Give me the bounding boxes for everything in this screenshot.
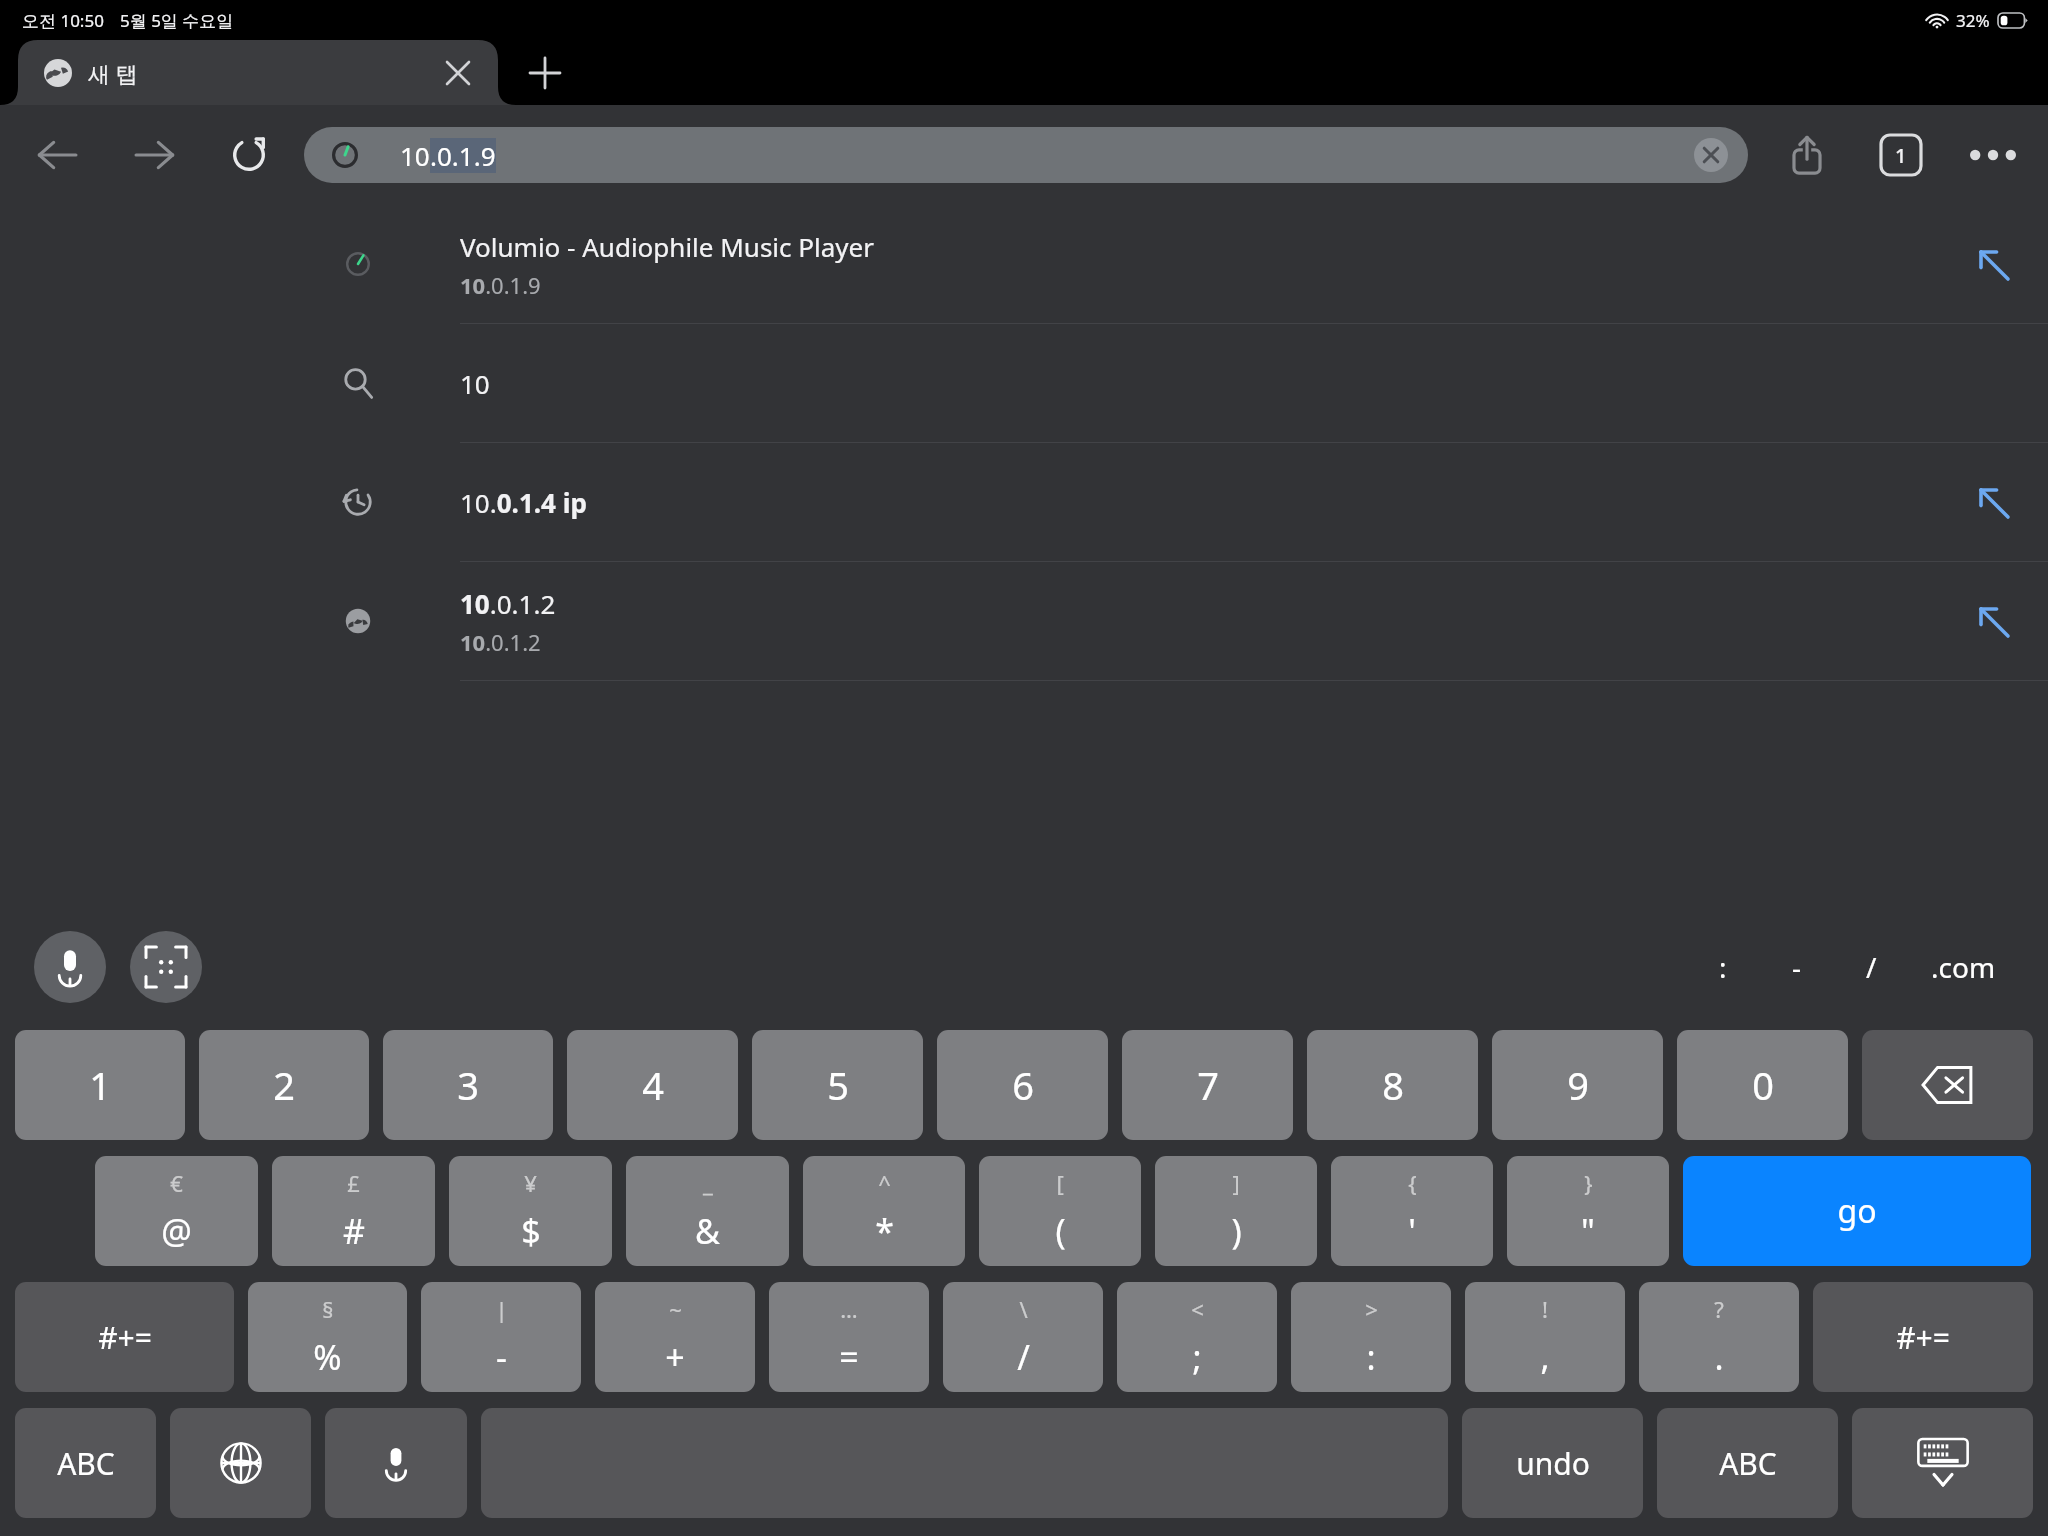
staticText: 10.0.1.4 ip [460, 485, 587, 520]
staticText: … [840, 1294, 858, 1324]
staticText: # [343, 1208, 365, 1254]
staticText: 6 [1012, 1059, 1034, 1111]
button[interactable]: 새 탭 [18, 40, 498, 105]
button[interactable]: 삭제 [1862, 1030, 2033, 1140]
button[interactable]: 새 탭 추가 [512, 40, 577, 105]
staticText: ~ [669, 1294, 682, 1324]
staticText: @ [161, 1208, 192, 1254]
button[interactable]: 2 [199, 1030, 369, 1140]
button[interactable]: ! [1465, 1282, 1625, 1392]
button[interactable]: 뒤로 [28, 126, 86, 184]
button[interactable]: 주소창에 입력 [1938, 205, 2048, 323]
staticText: . [1714, 1334, 1724, 1380]
staticText: 32% [1956, 9, 1990, 32]
staticText: 10.0.1.2 [460, 627, 541, 657]
staticText: 오전 10:50 [22, 9, 104, 32]
staticText: ( [1055, 1208, 1066, 1254]
button[interactable]: 9 [1492, 1030, 1663, 1140]
button[interactable]: ABC [15, 1408, 156, 1518]
button[interactable]: } [1507, 1156, 1669, 1266]
button[interactable]: 새로고침 [220, 126, 278, 184]
button[interactable]: / [1834, 930, 1908, 1004]
button[interactable]: #+= [1813, 1282, 2033, 1392]
staticText: / [1017, 1334, 1030, 1380]
button[interactable]: 0 [1677, 1030, 1848, 1140]
staticText: ' [1408, 1208, 1416, 1254]
staticText: 7 [1197, 1059, 1219, 1111]
button[interactable]: 8 [1307, 1030, 1478, 1140]
button[interactable]: 5 [752, 1030, 923, 1140]
staticText: #+= [1896, 1317, 1950, 1358]
button[interactable]: 언어 전환 [170, 1408, 311, 1518]
staticText: % [313, 1334, 342, 1380]
button[interactable]: - [1760, 930, 1834, 1004]
button[interactable]: … [769, 1282, 929, 1392]
staticText: Volumio - Audiophile Music Player [460, 229, 874, 264]
staticText: : [1719, 948, 1727, 986]
staticText: | [495, 1294, 508, 1324]
button[interactable]: 10 [304, 127, 1748, 183]
button[interactable]: _ [626, 1156, 789, 1266]
button[interactable]: ] [1155, 1156, 1317, 1266]
button[interactable]: > [1291, 1282, 1451, 1392]
button[interactable]: € [95, 1156, 258, 1266]
staticText: 2 [273, 1059, 295, 1111]
staticText: #+= [98, 1317, 152, 1358]
staticText: .com [1931, 948, 1996, 986]
staticText: ABC [1719, 1443, 1777, 1484]
button[interactable]: : [1686, 930, 1760, 1004]
button[interactable]: 추가 메뉴 [1964, 126, 2022, 184]
staticText: § [322, 1294, 334, 1324]
button[interactable]: 주소창에 입력 [1938, 562, 2048, 680]
button[interactable]: [ [979, 1156, 1141, 1266]
staticText: 5 [827, 1059, 849, 1111]
staticText: 4 [642, 1059, 664, 1111]
button[interactable]: #+= [15, 1282, 234, 1392]
button[interactable]: 7 [1122, 1030, 1293, 1140]
button[interactable]: 3 [383, 1030, 553, 1140]
staticText: $ [521, 1208, 541, 1254]
staticText: ABC [57, 1443, 115, 1484]
staticText: ! [1542, 1294, 1548, 1324]
staticText: - [496, 1334, 507, 1380]
button[interactable]: 앞으로 [126, 126, 184, 184]
button[interactable]: { [1331, 1156, 1493, 1266]
staticText: : [1366, 1334, 1376, 1380]
button[interactable]: < [1117, 1282, 1277, 1392]
button[interactable]: 탭 닫기 [438, 53, 478, 93]
button[interactable]: \ [943, 1282, 1103, 1392]
staticText: 0 [1752, 1059, 1774, 1111]
button[interactable]: 음성 입력 [325, 1408, 467, 1518]
button[interactable]: £ [272, 1156, 435, 1266]
button[interactable]: 4 [567, 1030, 738, 1140]
button[interactable]: | [421, 1282, 581, 1392]
button[interactable]: ABC [1657, 1408, 1838, 1518]
button[interactable]: ^ [803, 1156, 965, 1266]
button[interactable]: ? [1639, 1282, 1799, 1392]
button[interactable]: ¥ [449, 1156, 612, 1266]
button[interactable]: 음성 입력 [34, 931, 106, 1003]
button[interactable]: 10 [0, 324, 2048, 442]
button[interactable]: ~ [595, 1282, 755, 1392]
button[interactable]: § [248, 1282, 407, 1392]
staticText: , [1540, 1334, 1550, 1380]
button[interactable]: 코드 스캔 [130, 931, 202, 1003]
staticText: [ [1056, 1168, 1064, 1198]
button[interactable]: 10.0.1.2 [0, 562, 2048, 680]
button[interactable]: 지우기 [1684, 128, 1738, 182]
staticText: { [1408, 1168, 1417, 1198]
button[interactable]: 주소창에 입력 [1938, 443, 2048, 561]
staticText: € [170, 1168, 183, 1198]
button[interactable]: 6 [937, 1030, 1108, 1140]
button[interactable]: 10.0.1.4 ip [0, 443, 2048, 561]
button[interactable]: .com [1908, 930, 2018, 1004]
button[interactable]: undo [1462, 1408, 1643, 1518]
button[interactable]: 1 [15, 1030, 185, 1140]
button[interactable]: 공유 [1778, 126, 1836, 184]
staticText: 10.0.1.2 [460, 586, 556, 621]
button[interactable]: go [1683, 1156, 2031, 1266]
button[interactable]: Volumio - Audiophile Music Player [0, 205, 2048, 323]
button[interactable]: 키보드 숨기기 [1852, 1408, 2033, 1518]
button[interactable]: 탭 목록 [1872, 126, 1930, 184]
